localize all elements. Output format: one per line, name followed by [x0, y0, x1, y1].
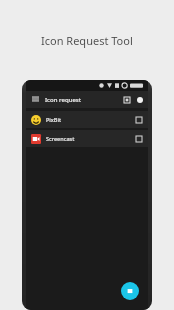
- staticText: Icon request: [45, 96, 82, 104]
- staticText: PixBit: [46, 116, 62, 123]
- staticText: Screencast: [46, 135, 75, 142]
- button[interactable]: Send request: [121, 282, 139, 300]
- button[interactable]: Open navigation drawer: [29, 93, 42, 106]
- button[interactable]: More options: [133, 93, 146, 106]
- button[interactable]: Select Screencast: [132, 132, 145, 145]
- button[interactable]: Select PixBit: [132, 113, 145, 126]
- button[interactable]: PixBit: [26, 111, 148, 128]
- button[interactable]: Screencast: [26, 130, 148, 147]
- staticText: Icon Request Tool: [41, 33, 133, 48]
- button[interactable]: Select all: [120, 93, 133, 106]
